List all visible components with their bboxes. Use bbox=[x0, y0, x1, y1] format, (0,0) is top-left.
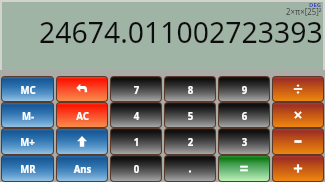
staticText: 24674.011002723393 bbox=[39, 11, 323, 51]
staticText: DEG bbox=[309, 1, 322, 9]
button[interactable]: 1 bbox=[111, 129, 161, 154]
button[interactable]: 5 bbox=[165, 103, 215, 127]
button[interactable]: Divide bbox=[273, 77, 323, 101]
button[interactable]: 0 bbox=[111, 156, 161, 181]
button[interactable]: Plus bbox=[273, 156, 323, 181]
button[interactable]: Shift bbox=[57, 129, 107, 154]
staticText: Ans bbox=[73, 161, 92, 176]
staticText: AC bbox=[76, 108, 89, 123]
button[interactable]: 3 bbox=[219, 129, 269, 154]
button[interactable]: M- bbox=[2, 103, 53, 127]
staticText: 9 bbox=[241, 82, 248, 97]
staticText: MR bbox=[20, 161, 36, 176]
staticText: 2×π×[25]² bbox=[286, 6, 322, 18]
staticText: 8 bbox=[187, 82, 194, 97]
button[interactable]: 9 bbox=[219, 77, 269, 101]
button[interactable]: Ans bbox=[57, 156, 107, 181]
button[interactable]: 2 bbox=[165, 129, 215, 154]
button[interactable]: 8 bbox=[165, 77, 215, 101]
staticText: M+ bbox=[20, 134, 35, 149]
staticText: M- bbox=[22, 108, 34, 123]
staticText: 5 bbox=[187, 108, 194, 123]
button[interactable]: Minus bbox=[273, 129, 323, 154]
staticText: 7 bbox=[133, 82, 140, 97]
staticText: 6 bbox=[241, 108, 248, 123]
button[interactable]: 7 bbox=[111, 77, 161, 101]
button[interactable]: Backspace bbox=[57, 77, 107, 101]
staticText: 0 bbox=[133, 161, 140, 176]
button[interactable]: 6 bbox=[219, 103, 269, 127]
button[interactable]: AC bbox=[57, 103, 107, 127]
button[interactable]: 4 bbox=[111, 103, 161, 127]
button[interactable]: Multiply bbox=[273, 103, 323, 127]
staticText: 1 bbox=[133, 134, 140, 149]
button[interactable]: Equals bbox=[219, 156, 269, 181]
staticText: 4 bbox=[133, 108, 140, 123]
button[interactable]: MC bbox=[2, 77, 53, 101]
button[interactable]: MR bbox=[2, 156, 53, 181]
staticText: 2 bbox=[187, 134, 194, 149]
button[interactable]: M+ bbox=[2, 129, 53, 154]
button[interactable]: Decimal point bbox=[165, 156, 215, 181]
staticText: MC bbox=[20, 82, 36, 97]
staticText: 3 bbox=[241, 134, 248, 149]
